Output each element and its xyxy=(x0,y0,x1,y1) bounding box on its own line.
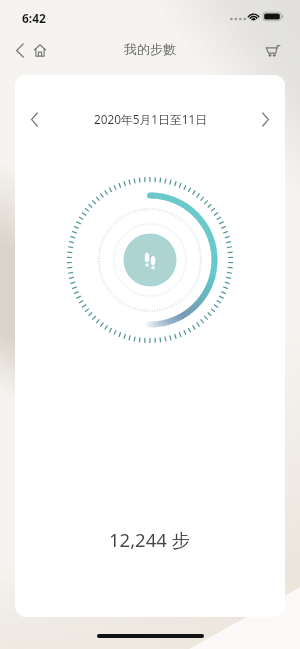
button[interactable]: Previous week xyxy=(17,102,51,136)
staticText: 12,244 步 xyxy=(109,527,191,552)
button[interactable]: Home xyxy=(25,35,55,65)
button[interactable]: Next week xyxy=(248,102,282,136)
staticText: 我的步數 xyxy=(124,41,176,57)
button[interactable]: Shopping cart xyxy=(257,35,287,65)
button[interactable]: Back xyxy=(5,35,35,65)
staticText: 6:42 xyxy=(22,10,46,26)
staticText: 2020年5月1日至11日 xyxy=(94,111,207,127)
